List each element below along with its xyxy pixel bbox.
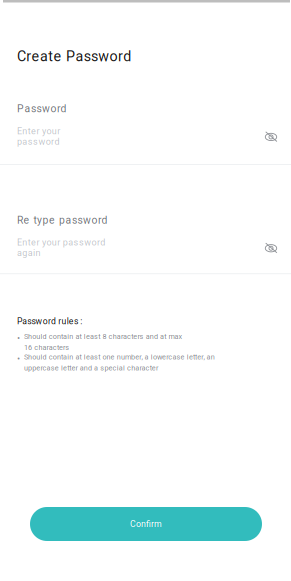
staticText: Confirm (130, 519, 162, 529)
staticText: Should contain at least one number, a lo… (24, 353, 215, 372)
button[interactable]: Show Password (261, 126, 281, 146)
staticText: • (17, 353, 20, 364)
staticText: Create Password (17, 48, 131, 65)
staticText: Password (17, 103, 66, 115)
staticText: • (17, 332, 20, 343)
staticText: Re type password (17, 214, 107, 226)
button[interactable]: Confirm (30, 507, 262, 541)
button[interactable]: Show Re type password (261, 238, 281, 258)
staticText: Enter your password (17, 126, 60, 147)
staticText: Enter your password again (17, 237, 105, 258)
staticText: Password rules : (17, 316, 82, 326)
staticText: Should contain at least 8 characters and… (24, 332, 183, 352)
